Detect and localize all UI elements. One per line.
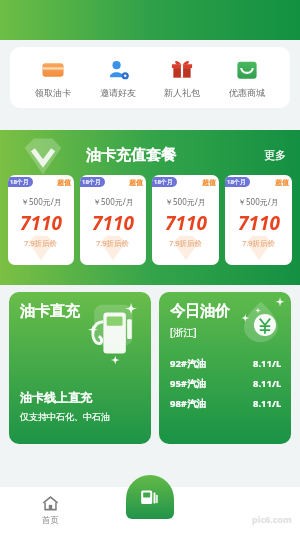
staticText: 8.11/L bbox=[253, 377, 282, 390]
button[interactable]: 邀请好友 bbox=[96, 55, 140, 100]
staticText: ￥500元/月 bbox=[165, 196, 206, 207]
staticText: 领取油卡 bbox=[35, 87, 71, 98]
staticText: 超值 bbox=[57, 178, 71, 187]
staticText: 优惠商城 bbox=[229, 87, 265, 98]
staticText: 18个月 bbox=[82, 178, 101, 186]
staticText: 8.11/L bbox=[253, 397, 282, 410]
staticText: 油卡线上直充 bbox=[20, 390, 92, 405]
staticText: 7110 bbox=[20, 210, 62, 236]
staticText: 98#汽油 bbox=[170, 397, 207, 410]
staticText: 7.9折后价 bbox=[169, 238, 203, 248]
staticText: 超值 bbox=[275, 178, 289, 187]
button[interactable]: 我的 bbox=[230, 490, 270, 530]
staticText: 邀请好友 bbox=[100, 87, 136, 98]
staticText: 新人礼包 bbox=[164, 87, 200, 98]
staticText: 18个月 bbox=[10, 178, 29, 186]
staticText: ￥500元/月 bbox=[21, 196, 62, 207]
staticText: 超值 bbox=[202, 178, 216, 187]
button[interactable]: 加油 bbox=[126, 475, 174, 519]
staticText: 油卡充值套餐 bbox=[86, 146, 176, 165]
staticText: 92#汽油 bbox=[170, 357, 207, 370]
staticText: 7110 bbox=[165, 210, 207, 236]
button[interactable]: 18个月 bbox=[80, 175, 146, 265]
staticText: 7.9折后价 bbox=[96, 238, 130, 248]
staticText: 7110 bbox=[92, 210, 134, 236]
staticText: 7110 bbox=[238, 210, 280, 236]
staticText: 仅支持中石化、中石油 bbox=[20, 411, 110, 422]
button[interactable]: 油卡直充 bbox=[9, 292, 151, 444]
staticText: 油卡直充 bbox=[20, 302, 80, 321]
staticText: 8.11/L bbox=[253, 357, 282, 370]
button[interactable]: 新人礼包 bbox=[160, 55, 204, 100]
button[interactable]: 优惠商城 bbox=[225, 55, 269, 100]
staticText: pic6.com bbox=[252, 513, 292, 525]
button[interactable]: 领取油卡 bbox=[31, 55, 75, 100]
staticText: 7.9折后价 bbox=[242, 238, 276, 248]
button[interactable]: 18个月 bbox=[8, 175, 74, 265]
button[interactable]: 18个月 bbox=[152, 175, 219, 265]
staticText: 18个月 bbox=[227, 178, 246, 186]
staticText: [浙江] bbox=[170, 325, 197, 339]
staticText: 首页 bbox=[42, 515, 59, 526]
button[interactable]: 首页 bbox=[34, 493, 67, 528]
button[interactable]: 更多 bbox=[262, 146, 288, 164]
staticText: 18个月 bbox=[154, 178, 173, 186]
staticText: 今日油价 bbox=[170, 302, 230, 321]
staticText: 超值 bbox=[129, 178, 143, 187]
button[interactable]: 今日油价 bbox=[159, 292, 291, 444]
button[interactable]: 18个月 bbox=[225, 175, 292, 265]
staticText: 更多 bbox=[264, 148, 286, 162]
staticText: 95#汽油 bbox=[170, 377, 207, 390]
staticText: ￥500元/月 bbox=[238, 196, 279, 207]
staticText: 7.9折后价 bbox=[24, 238, 58, 248]
staticText: ￥500元/月 bbox=[93, 196, 134, 207]
